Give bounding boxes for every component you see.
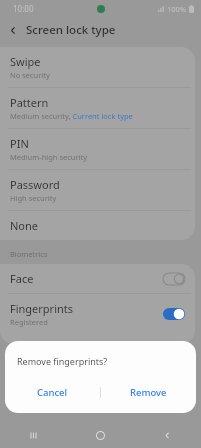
button[interactable]: Fingerprints: [0, 294, 195, 334]
button[interactable]: Remove: [101, 379, 196, 405]
button[interactable]: Off: [163, 273, 185, 285]
button[interactable]: Pattern: [0, 88, 195, 128]
staticText: PIN: [10, 136, 29, 151]
button[interactable]: Face: [0, 264, 195, 293]
staticText: 100%: [167, 4, 187, 14]
staticText: Biometrics: [10, 249, 48, 259]
staticText: Cancel: [37, 386, 68, 399]
button[interactable]: Swipe: [0, 47, 195, 87]
button[interactable]: Password: [0, 170, 195, 210]
button[interactable]: On: [163, 308, 185, 320]
button[interactable]: PIN: [0, 129, 195, 169]
button[interactable]: Home: [67, 422, 134, 448]
staticText: Pattern: [10, 95, 49, 110]
staticText: Password: [10, 177, 60, 192]
button[interactable]: Recents: [0, 422, 67, 448]
staticText: No security: [10, 70, 50, 80]
button[interactable]: Navigate up: [0, 17, 26, 43]
staticText: Face: [10, 271, 34, 286]
staticText: Medium security, Current lock type: [10, 111, 133, 121]
button[interactable]: None: [0, 211, 195, 240]
staticText: Fingerprints: [10, 301, 74, 316]
button[interactable]: Cancel: [5, 379, 100, 405]
staticText: Remove fingerprints?: [17, 355, 108, 367]
staticText: Registered: [10, 317, 48, 327]
staticText: Remove: [130, 386, 167, 399]
staticText: High security: [10, 193, 57, 203]
staticText: 10:00: [13, 3, 34, 14]
button[interactable]: Back: [134, 422, 201, 448]
staticText: None: [10, 218, 39, 233]
staticText: Screen lock type: [26, 22, 116, 38]
staticText: Swipe: [10, 54, 41, 69]
staticText: Medium-high security: [10, 152, 88, 162]
